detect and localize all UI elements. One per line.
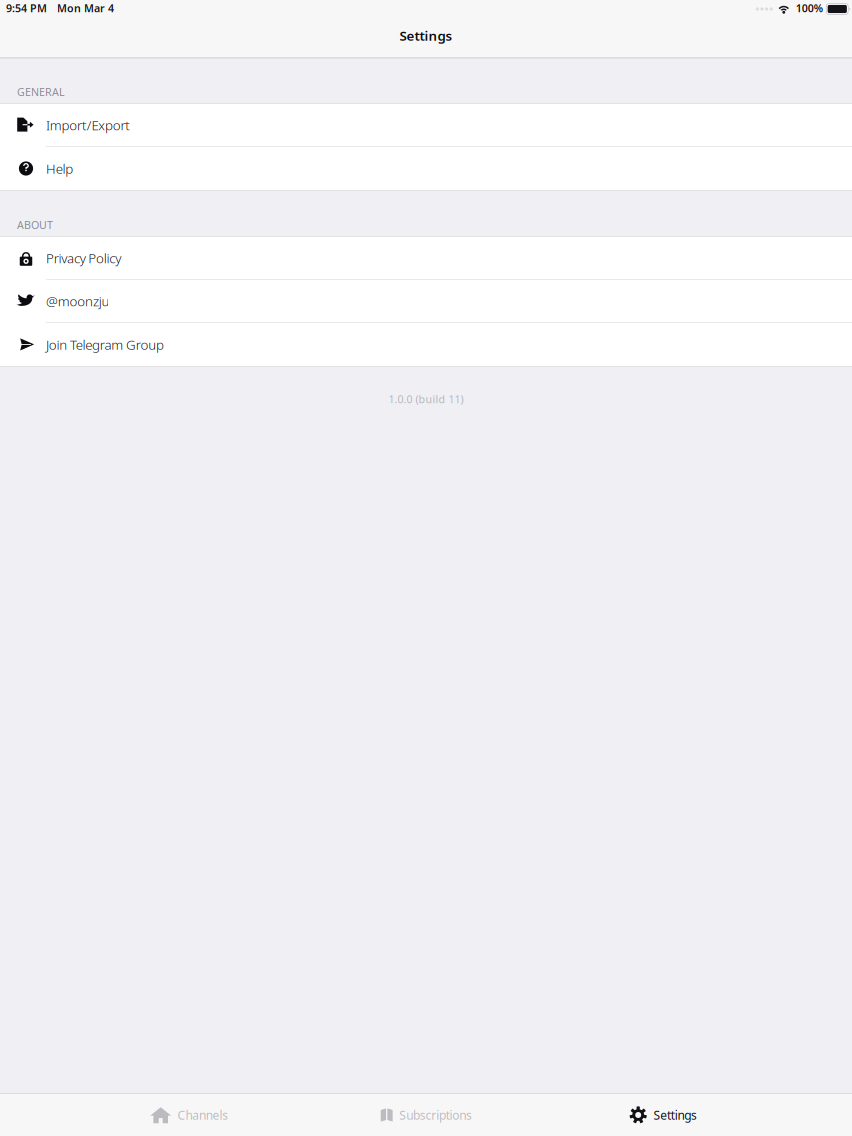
staticText: Mon Mar 4 — [57, 1, 114, 15]
staticText: Subscriptions — [399, 1107, 472, 1123]
staticText: @moonzju — [46, 292, 109, 310]
staticText: 1.0.0 (build 11) — [388, 392, 463, 406]
button[interactable]: Import/Export — [0, 104, 852, 147]
staticText: 9:54 PM — [6, 1, 47, 15]
staticText: 100% — [796, 1, 823, 15]
button[interactable]: Privacy Policy — [0, 237, 852, 280]
button[interactable]: Settings — [544, 1094, 781, 1136]
button[interactable]: Channels — [70, 1094, 307, 1136]
staticText: Help — [46, 160, 73, 177]
button[interactable]: Join Telegram Group — [0, 323, 852, 366]
staticText: Settings — [653, 1107, 697, 1123]
button[interactable]: @moonzju — [0, 280, 852, 323]
staticText: ABOUT — [17, 218, 53, 232]
staticText: Join Telegram Group — [46, 336, 164, 353]
button[interactable]: Help — [0, 147, 852, 190]
staticText: Channels — [178, 1107, 228, 1123]
staticText: Import/Export — [46, 116, 130, 134]
button[interactable]: Subscriptions — [307, 1094, 544, 1136]
staticText: GENERAL — [17, 85, 65, 99]
staticText: Settings — [399, 27, 452, 44]
staticText: Privacy Policy — [46, 249, 121, 267]
